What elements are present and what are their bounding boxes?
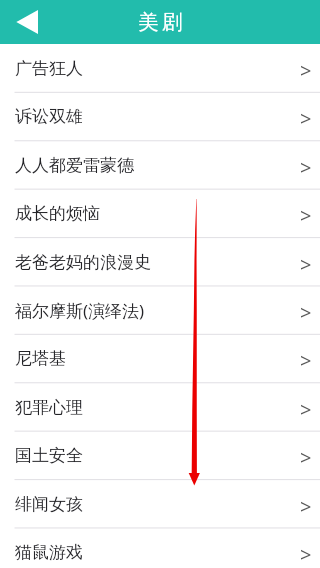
staticText: 诉讼双雄: [15, 106, 83, 127]
button[interactable]: 老爸老妈的浪漫史: [0, 238, 320, 286]
staticText: >: [300, 493, 312, 520]
button[interactable]: 成长的烦恼: [0, 189, 320, 237]
staticText: 福尔摩斯(演绎法): [15, 299, 145, 322]
staticText: 人人都爱雷蒙德: [15, 155, 134, 176]
button[interactable]: 诉讼双雄: [0, 92, 320, 140]
staticText: >: [300, 154, 312, 181]
staticText: 成长的烦恼: [15, 203, 100, 224]
staticText: 猫鼠游戏: [15, 542, 83, 563]
staticText: 老爸老妈的浪漫史: [15, 252, 151, 273]
staticText: >: [300, 299, 312, 326]
button[interactable]: 猫鼠游戏: [0, 528, 320, 568]
staticText: >: [300, 202, 312, 229]
staticText: >: [300, 396, 312, 423]
button[interactable]: 绯闻女孩: [0, 480, 320, 528]
button[interactable]: 福尔摩斯(演绎法): [0, 286, 320, 334]
staticText: >: [300, 541, 312, 568]
staticText: 美剧: [138, 9, 186, 35]
staticText: 绯闻女孩: [15, 494, 83, 515]
staticText: >: [300, 347, 312, 374]
staticText: 国土安全: [15, 445, 83, 466]
button[interactable]: 国土安全: [0, 431, 320, 479]
staticText: >: [300, 251, 312, 278]
staticText: 广告狂人: [15, 58, 83, 79]
button[interactable]: 尼塔基: [0, 334, 320, 382]
staticText: >: [300, 444, 312, 471]
button[interactable]: Back: [8, 2, 48, 42]
button[interactable]: 广告狂人: [0, 44, 320, 92]
staticText: 尼塔基: [15, 348, 66, 369]
staticText: 犯罪心理: [15, 397, 83, 418]
button[interactable]: 人人都爱雷蒙德: [0, 141, 320, 189]
staticText: >: [300, 57, 312, 84]
button[interactable]: 犯罪心理: [0, 383, 320, 431]
staticText: >: [300, 105, 312, 132]
